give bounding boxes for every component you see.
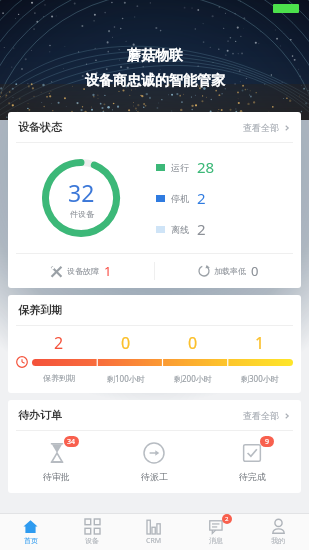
staticText: 我的 [271, 536, 285, 545]
button[interactable]: 待派工 [105, 431, 203, 493]
button[interactable]: 9 [203, 431, 301, 493]
button[interactable]: 2 [185, 514, 247, 550]
staticText: 待完成 [239, 471, 266, 482]
staticText: CRM [146, 536, 162, 546]
staticText: 28 [197, 157, 215, 177]
staticText: 设备商忠诚的智能管家 [85, 72, 225, 90]
staticText: 34 [67, 437, 76, 447]
staticText: 运行 [171, 162, 189, 173]
staticText: 件设备 [70, 209, 94, 219]
staticText: 设备状态 [18, 120, 62, 134]
staticText: 1 [104, 262, 112, 280]
staticText: 剩300小时 [241, 373, 279, 384]
staticText: 待派工 [141, 471, 168, 482]
staticText: 2 [197, 219, 206, 239]
staticText: 2 [225, 515, 229, 523]
button[interactable]: 查看全部 [237, 118, 291, 137]
staticText: 9 [265, 437, 270, 447]
staticText: 0 [188, 332, 198, 354]
staticText: 32 [68, 177, 95, 208]
staticText: 查看全部 [243, 410, 279, 421]
staticText: 设备故障 [67, 266, 99, 276]
button[interactable]: 34 [8, 431, 105, 493]
staticText: 2 [54, 332, 64, 354]
button[interactable]: 查看全部 [237, 406, 291, 425]
staticText: 2 [197, 188, 206, 208]
staticText: 停机 [171, 193, 189, 204]
button[interactable]: 设备 [61, 514, 123, 550]
staticText: 消息 [209, 536, 223, 545]
button[interactable]: CRM [123, 514, 185, 550]
staticText: 0 [121, 332, 131, 354]
button[interactable]: 加载率低 [155, 254, 301, 288]
staticText: 1 [255, 332, 265, 354]
staticText: 剩100小时 [107, 373, 145, 384]
staticText: 加载率低 [214, 266, 246, 276]
staticText: 蘑菇物联 [127, 47, 183, 65]
staticText: 剩200小时 [174, 373, 212, 384]
button[interactable]: 首页 [0, 514, 61, 550]
button[interactable]: 我的 [247, 514, 309, 550]
staticText: 设备 [85, 536, 99, 545]
staticText: 待审批 [43, 471, 70, 482]
staticText: 待办订单 [18, 408, 62, 422]
staticText: 离线 [171, 224, 189, 235]
staticText: 0 [251, 262, 259, 280]
staticText: 保养到期 [18, 303, 62, 317]
staticText: 首页 [24, 536, 38, 545]
staticText: 查看全部 [243, 122, 279, 133]
button[interactable]: 设备故障 [8, 254, 154, 288]
staticText: 保养到期 [43, 373, 75, 383]
